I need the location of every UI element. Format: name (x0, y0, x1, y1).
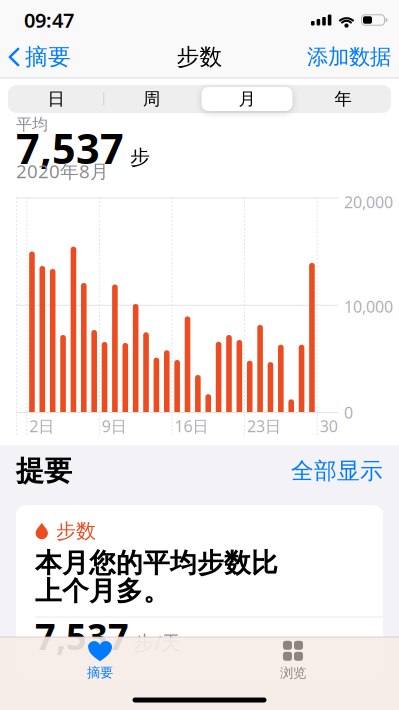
staticText: 添加数据 (307, 44, 391, 70)
button[interactable]: 周 (106, 85, 197, 113)
staticText: 月 (238, 88, 255, 110)
staticText: 年 (335, 88, 352, 110)
staticText: 10,000 (344, 296, 393, 317)
button[interactable]: 添加数据 (271, 40, 391, 74)
staticText: 摘要 (25, 43, 71, 71)
staticText: 23日 (247, 415, 281, 437)
staticText: 日 (47, 88, 64, 110)
button[interactable]: 浏览 (243, 637, 343, 685)
staticText: 2020年8月 (16, 159, 109, 183)
staticText: 20,000 (344, 191, 393, 213)
staticText: 步数 (56, 519, 96, 543)
staticText: 周 (143, 88, 160, 110)
staticText: 提要 (16, 454, 72, 488)
staticText: 全部显示 (291, 457, 383, 485)
staticText: 7,537 (35, 612, 129, 660)
staticText: 步数 (176, 43, 222, 71)
staticText: 步 (130, 145, 150, 170)
staticText: 09:47 (24, 7, 74, 33)
staticText: 16日 (174, 415, 208, 437)
staticText: 2日 (29, 415, 54, 437)
button[interactable]: 年 (298, 85, 389, 113)
staticText: 步/天 (134, 629, 181, 656)
staticText: 平均 (16, 115, 48, 134)
staticText: 0 (344, 402, 353, 423)
staticText: 摘要 (87, 664, 113, 681)
staticText: 上个月多。 (35, 575, 170, 607)
button[interactable]: 摘要 (8, 40, 74, 74)
button[interactable]: 日 (10, 85, 101, 113)
button[interactable]: 月 (201, 85, 292, 113)
staticText: 9日 (102, 415, 127, 437)
button[interactable]: 全部显示 (283, 457, 383, 485)
staticText: 30 (320, 415, 338, 437)
button[interactable]: 步数 (16, 505, 383, 680)
button[interactable]: 摘要 (50, 637, 150, 685)
staticText: 浏览 (280, 665, 306, 681)
staticText: 本月您的平均步数比 (35, 547, 278, 579)
staticText: 7,537 (16, 121, 124, 175)
